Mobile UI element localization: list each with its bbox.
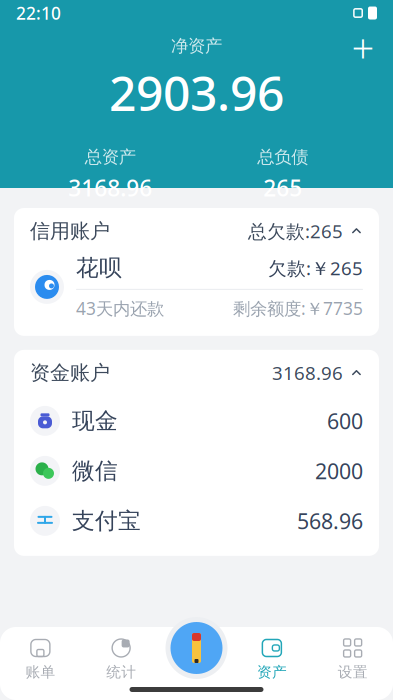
staticText: 现金	[72, 407, 118, 435]
staticText: 资产	[257, 663, 287, 681]
staticText: 2903.96	[109, 61, 284, 124]
button[interactable]: 花呗	[14, 254, 379, 336]
button[interactable]: 微信	[14, 446, 379, 496]
button[interactable]: 资金账户	[14, 350, 379, 396]
staticText: +	[351, 21, 374, 74]
button[interactable]: 资产	[231, 637, 312, 681]
button[interactable]: 添加账户	[341, 26, 385, 70]
staticText: 600	[327, 407, 363, 435]
staticText: 欠款:￥265	[268, 255, 363, 280]
staticText: 净资产	[171, 35, 222, 57]
staticText: 统计	[106, 663, 136, 681]
staticText: 43天内还款	[76, 297, 164, 320]
staticText: 资金账户	[30, 361, 110, 385]
button[interactable]: 设置	[312, 637, 393, 681]
button[interactable]: 支付宝	[14, 496, 379, 546]
button[interactable]: 记一笔	[163, 615, 229, 681]
staticText: 3168.96	[272, 360, 343, 385]
staticText: 信用账户	[30, 219, 110, 243]
staticText: 微信	[72, 457, 118, 485]
staticText: 设置	[338, 663, 368, 681]
staticText: 账单	[25, 663, 55, 681]
staticText: 265	[263, 173, 302, 203]
staticText: 总资产	[85, 146, 136, 168]
staticText: 剩余额度:￥7735	[233, 297, 363, 320]
staticText: 568.96	[297, 507, 363, 535]
staticText: 3168.96	[68, 173, 152, 203]
button[interactable]: 现金	[14, 396, 379, 446]
staticText: 总欠款:265	[248, 219, 343, 243]
staticText: 花呗	[76, 254, 122, 282]
button[interactable]: 账单	[0, 637, 81, 681]
staticText: 2000	[315, 457, 363, 485]
staticText: 总负债	[257, 146, 308, 168]
staticText: 22:10	[16, 1, 61, 24]
button[interactable]: 信用账户	[14, 208, 379, 254]
staticText: 支付宝	[72, 507, 141, 535]
button[interactable]: 统计	[81, 637, 162, 681]
